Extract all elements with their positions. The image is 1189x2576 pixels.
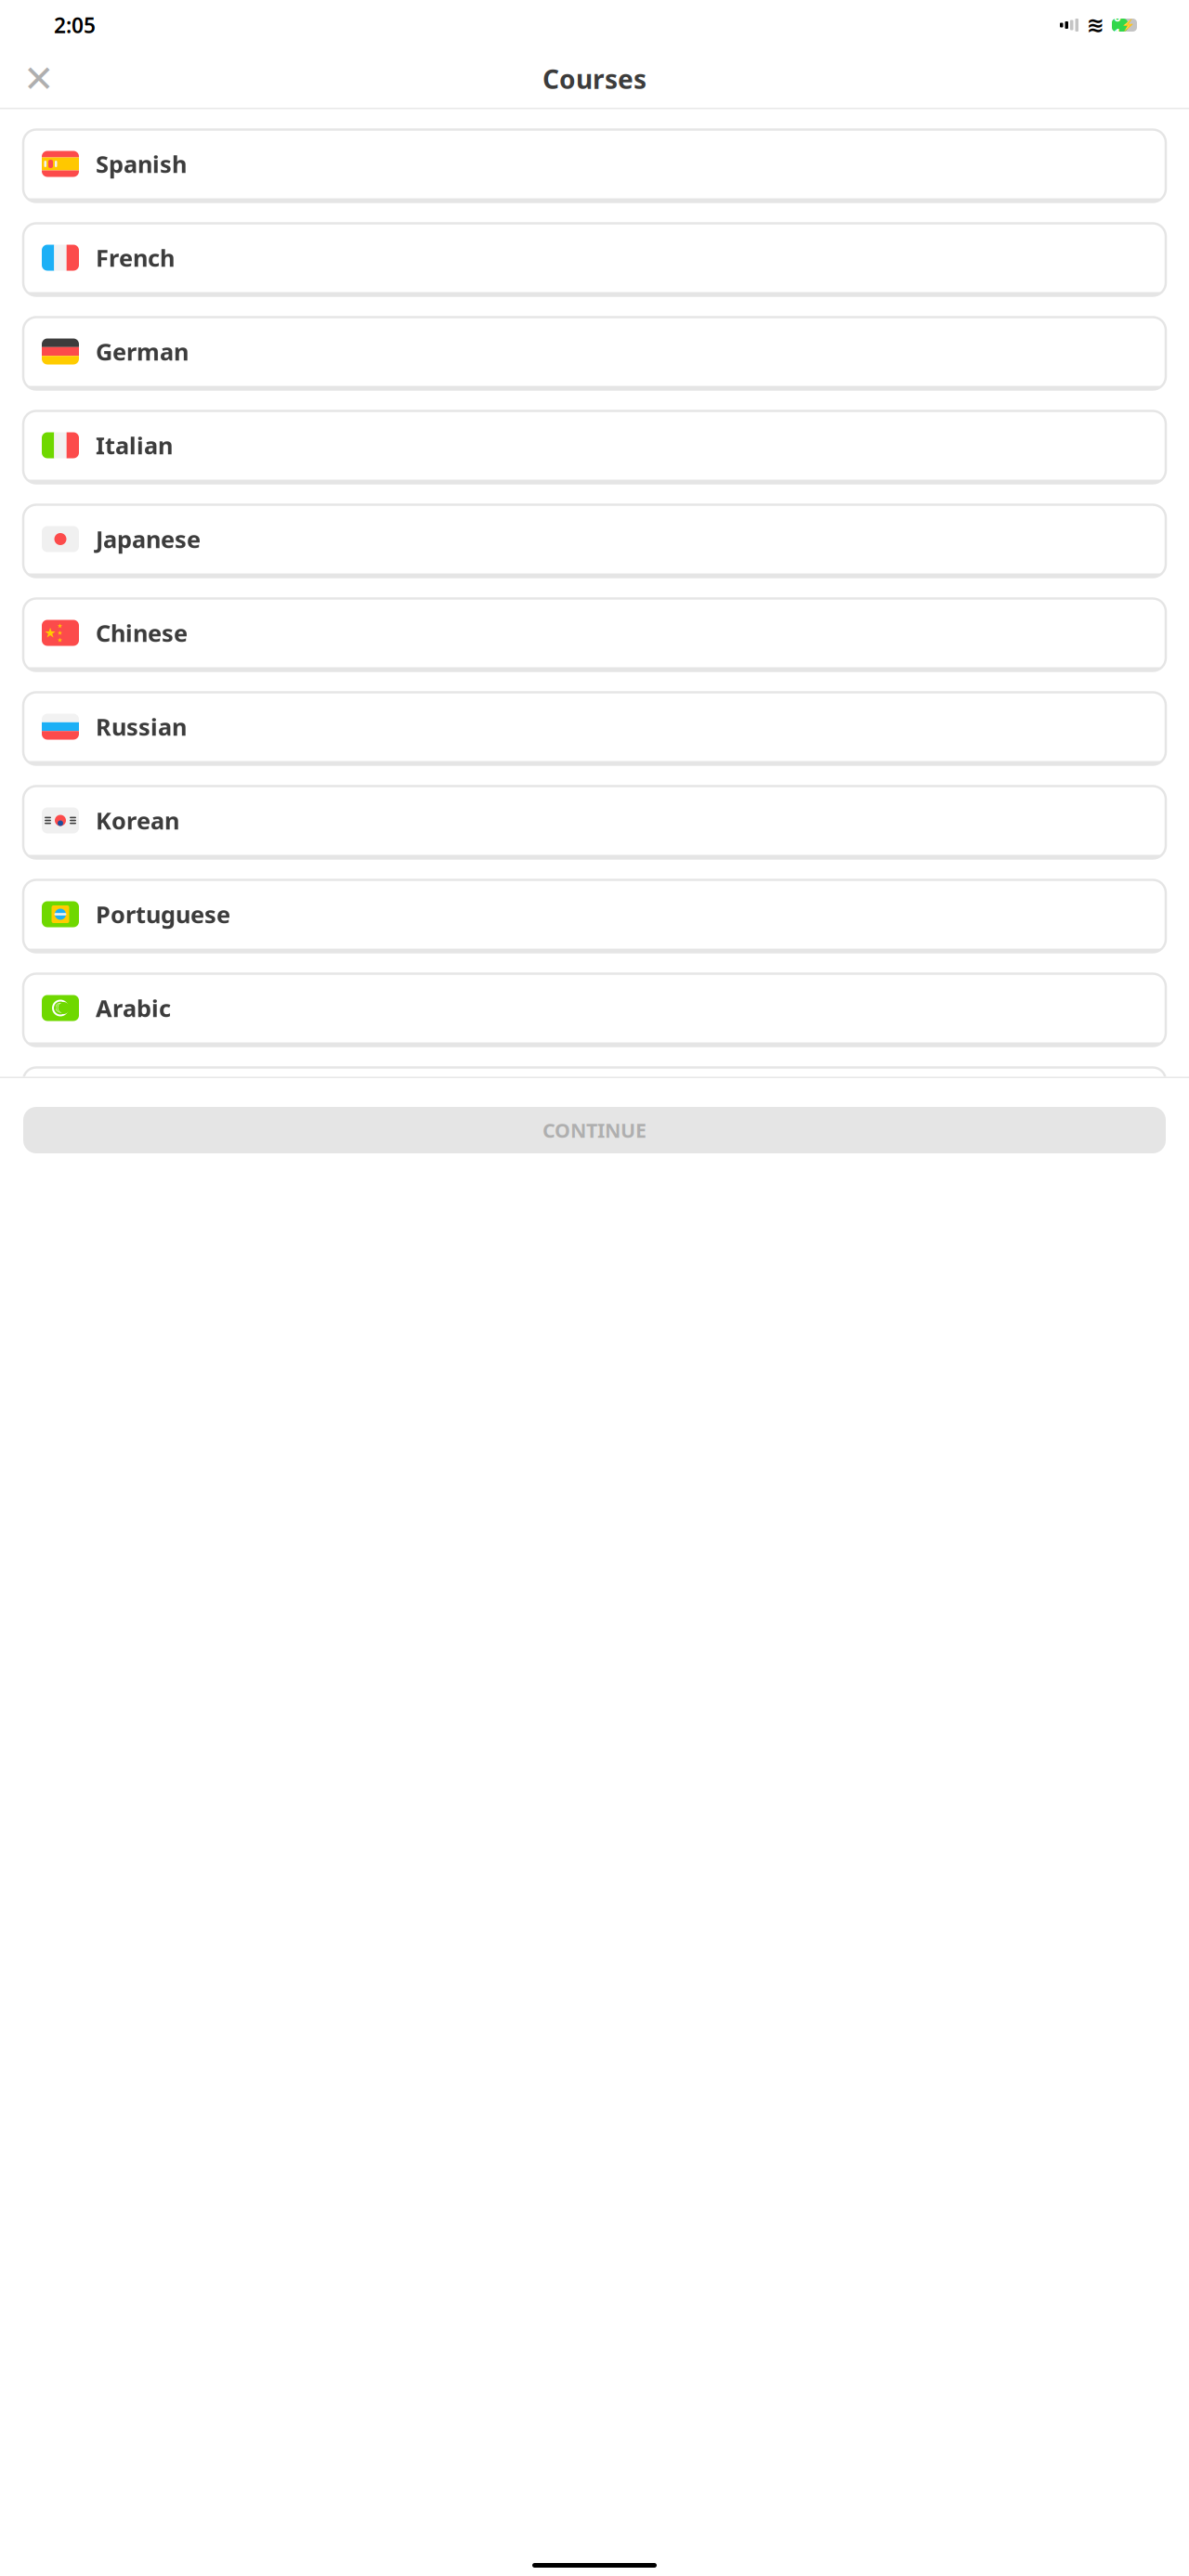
button[interactable]: CONTINUE (23, 1107, 1166, 1153)
button[interactable]: Turkish (23, 1067, 1166, 1140)
button[interactable]: Portuguese (23, 880, 1166, 952)
staticText: ★ (57, 629, 63, 636)
staticText: ★ (57, 622, 63, 629)
staticText: ★ (57, 636, 63, 643)
staticText: Arabic (96, 992, 171, 1024)
button[interactable]: Italian (23, 411, 1166, 483)
button[interactable]: French (23, 223, 1166, 296)
button[interactable]: Close (15, 55, 63, 103)
button[interactable]: Russian (23, 692, 1166, 765)
staticText: Russian (96, 711, 187, 742)
staticText: Chinese (96, 617, 188, 648)
staticText: Portuguese (96, 899, 230, 930)
button[interactable]: ★ (23, 598, 1166, 671)
staticText: ☾ (54, 1000, 66, 1016)
button[interactable]: Japanese (23, 505, 1166, 577)
staticText: Spanish (96, 148, 187, 180)
staticText: ✕ (23, 58, 55, 100)
button[interactable]: Korean (23, 786, 1166, 859)
staticText: Courses (542, 62, 647, 96)
staticText: 61 (1114, 9, 1121, 42)
staticText: Japanese (96, 523, 201, 555)
staticText: French (96, 242, 175, 273)
staticText: ≋ (1087, 13, 1104, 37)
staticText: ⚡ (1121, 19, 1135, 31)
button[interactable]: German (23, 317, 1166, 390)
staticText: Korean (96, 805, 179, 836)
button[interactable]: ☾ (23, 974, 1166, 1046)
staticText: ★ (44, 625, 56, 641)
staticText: German (96, 336, 189, 367)
staticText: CONTINUE (542, 1117, 647, 1143)
staticText: Italian (96, 430, 173, 461)
staticText: 2:05 (54, 11, 96, 39)
button[interactable]: Spanish (23, 130, 1166, 202)
staticText: Turkish (96, 1086, 182, 1117)
